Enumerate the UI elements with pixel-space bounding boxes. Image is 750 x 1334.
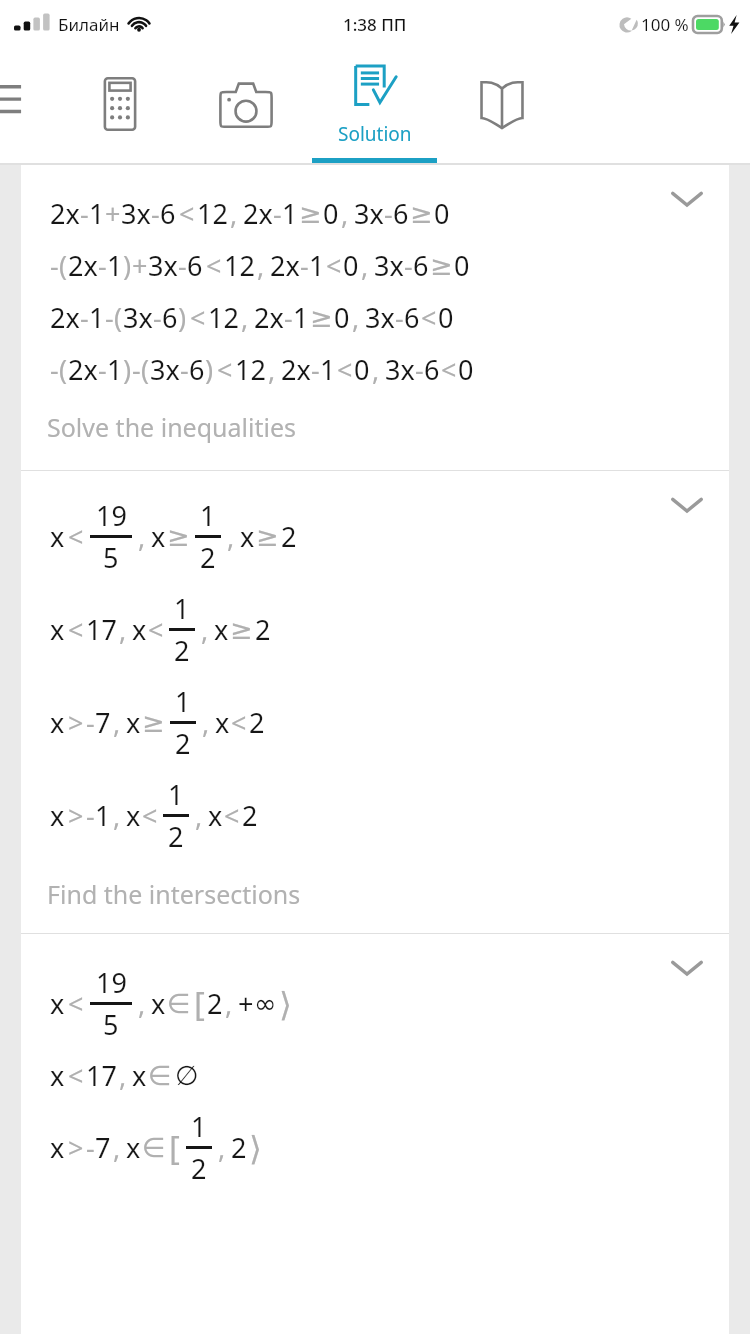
staticText: 6 bbox=[189, 351, 205, 388]
staticText: 2x bbox=[68, 351, 98, 388]
staticText: + bbox=[238, 985, 254, 1022]
staticText: 3x bbox=[354, 195, 384, 232]
staticText: < bbox=[326, 247, 342, 284]
staticText: 3x bbox=[374, 247, 404, 284]
staticText: < bbox=[148, 611, 164, 648]
staticText: ⟩ bbox=[279, 985, 292, 1023]
staticText: 2x bbox=[270, 247, 300, 284]
staticText: - bbox=[384, 195, 393, 232]
staticText: 1 bbox=[89, 299, 105, 336]
staticText: - bbox=[86, 1129, 95, 1166]
staticText: - bbox=[273, 195, 282, 232]
staticText: x bbox=[240, 518, 255, 555]
staticText: 6 bbox=[413, 247, 429, 284]
button[interactable]: Collapse step bbox=[659, 946, 715, 990]
button[interactable]: Textbook bbox=[470, 74, 534, 134]
staticText: 2x bbox=[243, 195, 273, 232]
staticText: 1 bbox=[174, 590, 190, 627]
button[interactable]: 2x bbox=[21, 165, 729, 471]
staticText: , bbox=[241, 299, 249, 336]
staticText: - bbox=[86, 797, 95, 834]
staticText: 7 bbox=[95, 704, 111, 741]
staticText: 2 bbox=[175, 725, 191, 762]
staticText: , bbox=[227, 518, 235, 555]
button[interactable]: x bbox=[21, 471, 729, 934]
staticText: ≥ bbox=[167, 521, 190, 552]
staticText: Find the intersections bbox=[47, 877, 301, 911]
staticText: 0 bbox=[334, 299, 350, 336]
staticText: 2x bbox=[68, 247, 98, 284]
staticText: , bbox=[138, 985, 146, 1022]
staticText: ( bbox=[114, 299, 123, 336]
staticText: < bbox=[142, 797, 158, 834]
button[interactable]: Calculator bbox=[92, 74, 148, 134]
staticText: + bbox=[105, 195, 121, 232]
staticText: < bbox=[68, 518, 84, 555]
staticText: 3x bbox=[148, 247, 178, 284]
button[interactable]: Collapse step bbox=[659, 483, 715, 527]
staticText: , bbox=[201, 611, 209, 648]
button[interactable]: Collapse step bbox=[659, 177, 715, 221]
staticText: , bbox=[119, 611, 127, 648]
staticText: - bbox=[132, 351, 141, 388]
staticText: , bbox=[218, 1129, 226, 1166]
staticText: ≥ bbox=[256, 521, 279, 552]
staticText: , bbox=[113, 1129, 121, 1166]
staticText: - bbox=[415, 351, 424, 388]
staticText: - bbox=[98, 351, 107, 388]
staticText: , bbox=[113, 797, 121, 834]
staticText: ∈ bbox=[167, 988, 191, 1019]
staticText: Билайн bbox=[58, 13, 120, 36]
staticText: - bbox=[284, 299, 293, 336]
staticText: , bbox=[361, 247, 369, 284]
staticText: + bbox=[132, 247, 148, 284]
staticText: , bbox=[195, 797, 203, 834]
staticText: x bbox=[126, 1129, 141, 1166]
staticText: x bbox=[50, 611, 65, 648]
staticText: 0 bbox=[354, 351, 370, 388]
staticText: 12 bbox=[224, 247, 255, 284]
staticText: 1 bbox=[309, 247, 325, 284]
staticText: < bbox=[190, 299, 206, 336]
staticText: , bbox=[230, 195, 238, 232]
staticText: < bbox=[224, 797, 240, 834]
staticText: 6 bbox=[393, 195, 409, 232]
staticText: - bbox=[153, 299, 162, 336]
staticText: 6 bbox=[187, 247, 203, 284]
staticText: ∅ bbox=[175, 1060, 199, 1091]
staticText: 3x bbox=[150, 351, 180, 388]
staticText: 6 bbox=[162, 299, 178, 336]
staticText: Solution bbox=[338, 121, 412, 147]
staticText: 2 bbox=[231, 1129, 247, 1166]
staticText: 7 bbox=[95, 1129, 111, 1166]
staticText: x bbox=[214, 611, 229, 648]
staticText: - bbox=[86, 704, 95, 741]
staticText: ⟩ bbox=[249, 1129, 262, 1167]
button[interactable]: x bbox=[21, 934, 729, 1334]
staticText: ≥ bbox=[430, 250, 453, 281]
button[interactable]: Menu bbox=[0, 70, 34, 126]
staticText: 2 bbox=[168, 818, 184, 855]
staticText: 2x bbox=[281, 351, 311, 388]
staticText: 3x bbox=[385, 351, 415, 388]
staticText: Solve the inequalities bbox=[47, 410, 296, 444]
staticText: 1 bbox=[200, 497, 216, 534]
staticText: - bbox=[80, 299, 89, 336]
staticText: , bbox=[138, 518, 146, 555]
staticText: 0 bbox=[323, 195, 339, 232]
staticText: 12 bbox=[197, 195, 228, 232]
staticText: [ bbox=[169, 1125, 180, 1170]
staticText: x bbox=[50, 518, 65, 555]
staticText: , bbox=[257, 247, 265, 284]
staticText: , bbox=[352, 299, 360, 336]
staticText: ( bbox=[59, 351, 68, 388]
staticText: 0 bbox=[438, 299, 454, 336]
staticText: 1 bbox=[282, 195, 298, 232]
button[interactable]: Solution bbox=[312, 48, 437, 165]
staticText: x bbox=[132, 611, 147, 648]
staticText: x bbox=[215, 704, 230, 741]
staticText: < bbox=[421, 299, 437, 336]
staticText: 1 bbox=[107, 351, 123, 388]
staticText: 1 bbox=[191, 1108, 207, 1145]
button[interactable]: Camera bbox=[214, 74, 278, 134]
